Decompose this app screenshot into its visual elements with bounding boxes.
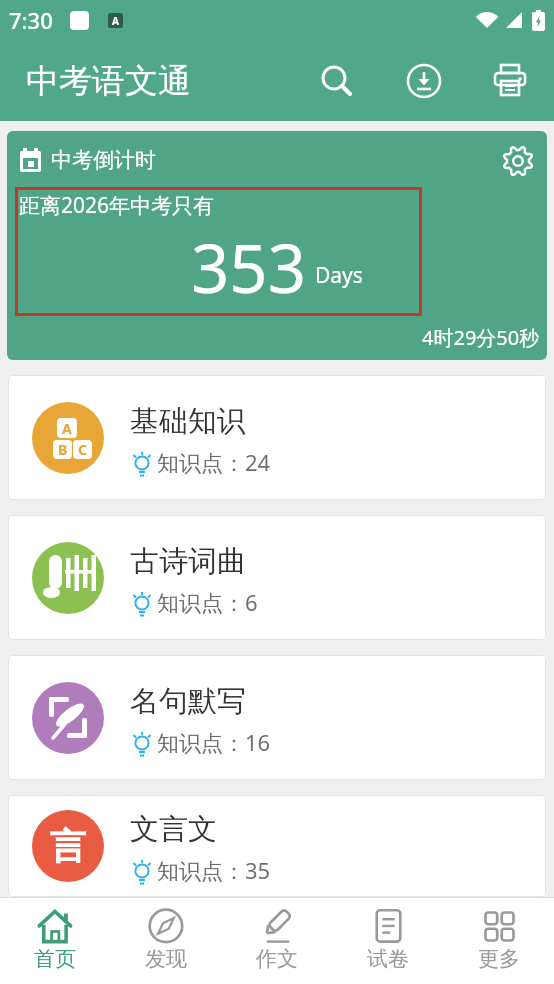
staticText: 距离2026年中考只有 [19,191,215,220]
staticText: 353 [191,221,306,312]
staticText: A [62,419,72,438]
staticText: A [112,14,119,28]
button[interactable]: 名句默写 [8,655,546,780]
button[interactable]: 发现 [110,898,221,984]
staticText: 知识点：35 [157,855,271,885]
button[interactable]: 首页 [0,898,110,984]
button[interactable] [486,57,534,105]
staticText: 发现 [145,946,187,972]
button[interactable] [400,57,448,105]
button[interactable]: 言 [8,795,546,897]
staticText: 中考倒计时 [51,147,156,173]
staticText: 知识点：24 [157,447,271,477]
staticText: C [78,440,87,459]
staticText: 古诗词曲 [130,543,246,580]
button[interactable] [313,57,361,105]
button[interactable]: A [8,375,546,500]
staticText: 首页 [34,946,76,972]
staticText: 文言文 [130,811,217,848]
staticText: Days [315,261,363,290]
staticText: 更多 [478,946,520,972]
button[interactable]: 中考倒计时 [7,131,547,360]
button[interactable]: 作文 [221,898,332,984]
staticText: 试卷 [367,946,409,972]
staticText: 知识点：16 [157,727,271,757]
staticText: 4时29分50秒 [422,324,540,351]
button[interactable]: 更多 [443,898,554,984]
button[interactable] [500,143,536,179]
staticText: 言 [50,824,86,869]
staticText: 作文 [256,946,298,972]
staticText: B [58,440,68,459]
staticText: 7:30 [9,5,53,35]
staticText: 名句默写 [130,683,246,720]
staticText: 知识点：6 [157,587,258,617]
staticText: 中考语文通 [26,60,191,102]
button[interactable]: 试卷 [332,898,443,984]
staticText: 基础知识 [130,403,246,440]
button[interactable]: 古诗词曲 [8,515,546,640]
